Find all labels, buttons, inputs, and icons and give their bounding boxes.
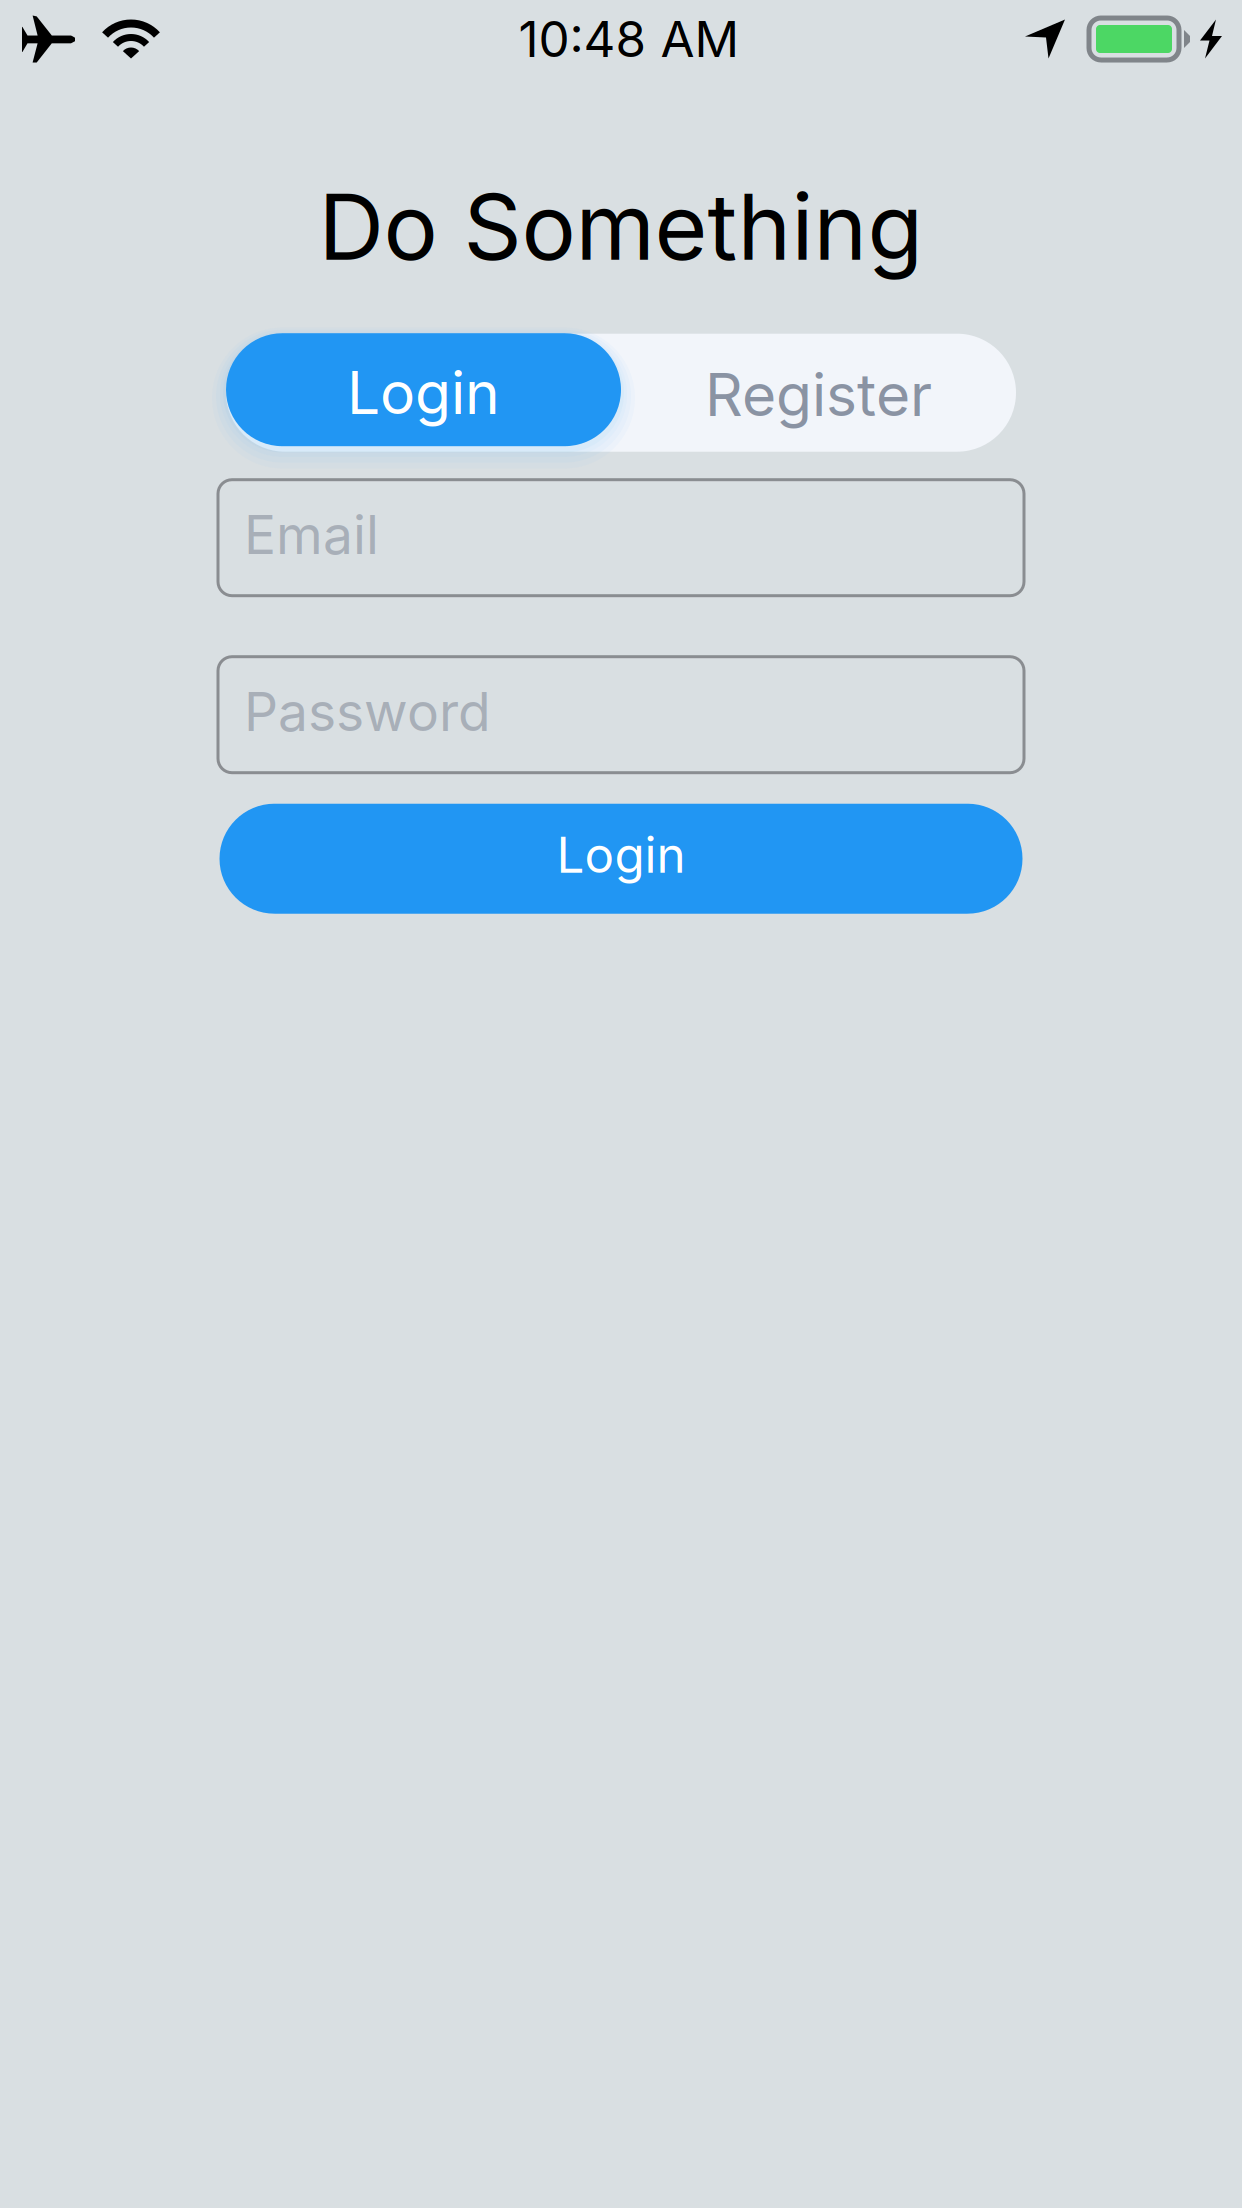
button[interactable]: Password xyxy=(218,657,1024,773)
staticText: Register xyxy=(705,359,932,430)
staticText: Do Something xyxy=(318,172,923,282)
staticText: Email xyxy=(244,502,379,567)
staticText: Password xyxy=(244,679,491,744)
button[interactable]: Login xyxy=(226,333,621,446)
button[interactable]: Login xyxy=(219,804,1022,914)
staticText: 10:48 AM xyxy=(518,9,739,69)
button[interactable]: Email xyxy=(218,480,1024,596)
staticText: Login xyxy=(347,357,500,428)
staticText: Login xyxy=(556,825,685,885)
button[interactable]: Register xyxy=(621,331,1016,449)
